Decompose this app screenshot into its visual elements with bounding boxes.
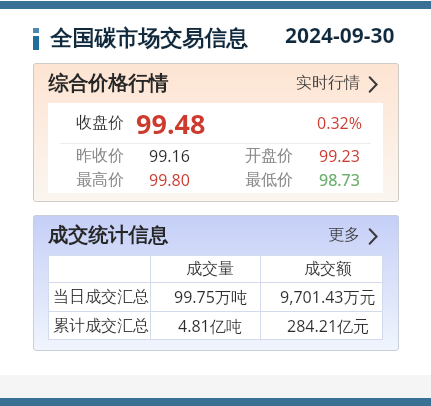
staticText: 99.16	[149, 145, 190, 167]
staticText: 综合价格行情	[48, 71, 168, 96]
staticText: 4.81亿吨	[178, 315, 242, 337]
staticText: 0.32%	[317, 112, 363, 134]
staticText: 98.73	[319, 169, 360, 191]
staticText: 最低价	[245, 170, 293, 190]
staticText: 累计成交汇总	[53, 316, 149, 336]
staticText: 284.21亿元	[287, 315, 370, 337]
staticText: 开盘价	[245, 146, 293, 166]
staticText: 更多	[328, 225, 360, 245]
staticText: 9,701.43万元	[280, 286, 376, 308]
staticText: 当日成交汇总	[53, 287, 149, 307]
staticText: 实时行情	[296, 73, 360, 93]
staticText: 99.23	[319, 145, 360, 167]
staticText: 99.75万吨	[174, 286, 247, 308]
staticText: 99.48	[136, 105, 206, 142]
staticText: 收盘价	[76, 113, 124, 133]
staticText: 成交额	[304, 259, 352, 279]
staticText: 99.80	[149, 169, 190, 191]
staticText: 全国碳市场交易信息	[50, 25, 248, 53]
staticText: 成交统计信息	[48, 223, 168, 248]
staticText: 2024-09-30	[285, 21, 395, 50]
staticText: 最高价	[76, 170, 124, 190]
staticText: 成交量	[186, 259, 234, 279]
button[interactable]: 综合价格行情	[33, 63, 399, 103]
button[interactable]: 成交统计信息	[33, 215, 399, 255]
staticText: 昨收价	[76, 146, 124, 166]
